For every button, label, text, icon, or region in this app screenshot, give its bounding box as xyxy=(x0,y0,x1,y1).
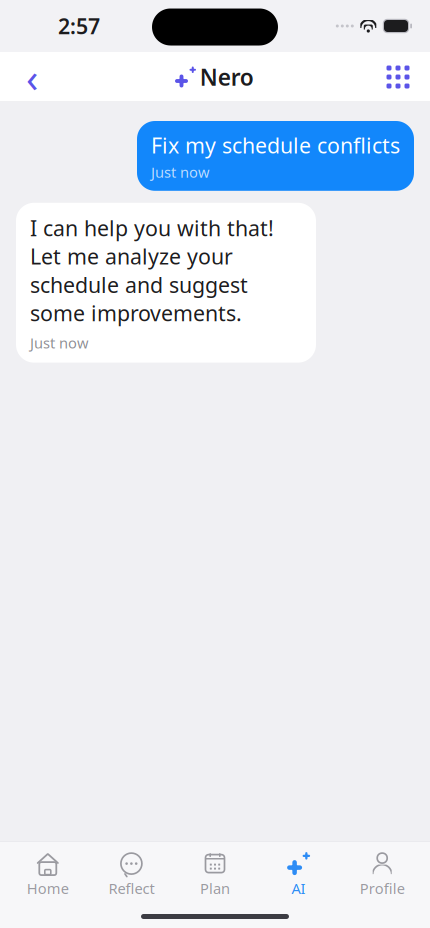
staticText: Nero xyxy=(200,62,254,92)
button[interactable]: Home xyxy=(6,846,90,902)
staticText: Home xyxy=(27,879,69,898)
button[interactable]: Plan xyxy=(173,846,257,902)
staticText: Plan xyxy=(200,879,230,898)
staticText: Just now xyxy=(151,162,210,182)
button[interactable]: Reflect xyxy=(90,846,173,902)
staticText: Reflect xyxy=(108,879,154,898)
button[interactable]: Apps xyxy=(376,55,420,99)
staticText: AI xyxy=(292,879,306,898)
button[interactable]: Profile xyxy=(340,846,424,902)
staticText: Profile xyxy=(360,879,405,898)
staticText: Just now xyxy=(30,333,89,353)
button[interactable]: Back xyxy=(10,55,54,99)
staticText: Fix my schedule conflicts xyxy=(151,131,400,159)
button[interactable]: AI xyxy=(257,846,340,902)
staticText: I can help you with that! Let me analyze… xyxy=(30,214,274,327)
staticText: ‹ xyxy=(26,50,38,103)
staticText: 2:57 xyxy=(58,12,100,40)
